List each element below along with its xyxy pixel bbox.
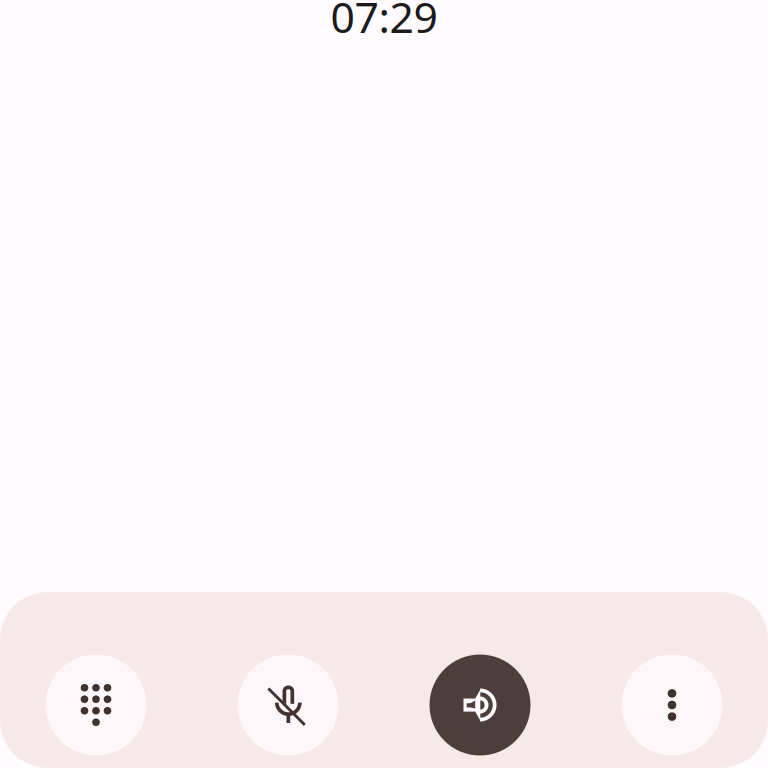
button[interactable]: Keypad (45, 654, 146, 755)
button[interactable]: Unmute (237, 654, 338, 755)
button[interactable]: Speaker (429, 654, 530, 755)
staticText: 07:29 (330, 0, 437, 45)
button[interactable]: More options (621, 654, 722, 755)
